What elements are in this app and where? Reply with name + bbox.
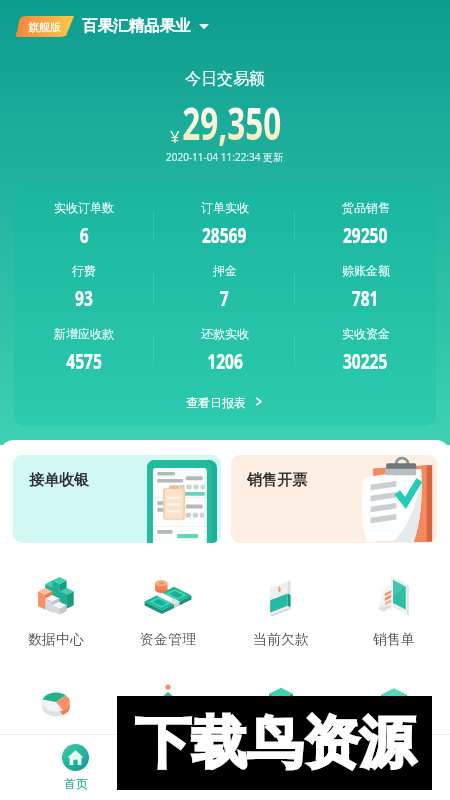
staticText: 押金 <box>213 263 237 278</box>
staticText: 百果汇精品果业 <box>82 16 191 36</box>
button[interactable]: 我的 <box>350 735 420 800</box>
staticText: 93 <box>75 284 94 313</box>
staticText: 7 <box>220 284 229 313</box>
staticText: 接单收银 <box>29 471 89 490</box>
staticText: 29,350 <box>182 92 282 153</box>
staticText: 数据中心 <box>28 631 84 649</box>
staticText: 1206 <box>207 347 243 376</box>
staticText: 4575 <box>66 347 102 376</box>
button[interactable]: 销售单 <box>337 573 450 649</box>
staticText: 今日交易额 <box>185 69 265 89</box>
staticText: 2020-11-04 11:22:34 更新 <box>166 150 284 164</box>
staticText: 30225 <box>343 347 388 376</box>
staticText: 货品销售 <box>342 200 390 215</box>
button[interactable]: 采购 <box>150 735 220 800</box>
button[interactable]: 销售开票 <box>231 455 437 543</box>
button[interactable] <box>337 680 450 738</box>
staticText: 首页 <box>64 776 88 791</box>
staticText: 实收订单数 <box>54 200 114 215</box>
staticText: ¥ <box>170 125 180 148</box>
staticText: 旗舰版 <box>28 20 61 34</box>
button[interactable]: 查看日报表 <box>14 377 436 426</box>
button[interactable] <box>112 680 224 738</box>
staticText: 还款实收 <box>201 326 249 341</box>
button[interactable]: 旗舰版 <box>14 16 74 37</box>
staticText: 实收资金 <box>342 326 390 341</box>
button[interactable]: 百果汇精品果业 <box>82 16 210 36</box>
staticText: 销售开票 <box>247 471 307 490</box>
button[interactable]: 接单收银 <box>13 455 221 543</box>
button[interactable]: 当前欠款 <box>224 573 337 649</box>
staticText: 新增应收款 <box>54 326 114 341</box>
staticText: 查看日报表 <box>186 395 246 410</box>
staticText: 下载鸟资源 <box>135 708 415 779</box>
staticText: 赊账金额 <box>342 263 390 278</box>
button[interactable]: 销售 <box>250 735 320 800</box>
staticText: 29250 <box>343 221 388 250</box>
staticText: 资金管理 <box>140 631 196 649</box>
staticText: 销售单 <box>373 631 415 649</box>
staticText: 当前欠款 <box>253 631 309 649</box>
button[interactable]: 数据中心 <box>0 573 112 649</box>
staticText: 781 <box>352 284 379 313</box>
staticText: 6 <box>80 221 89 250</box>
staticText: 28569 <box>202 221 247 250</box>
button[interactable]: 资金管理 <box>112 573 224 649</box>
staticText: 订单实收 <box>201 200 249 215</box>
button[interactable] <box>224 680 337 738</box>
button[interactable]: 首页 <box>40 735 110 800</box>
staticText: 行费 <box>72 263 96 278</box>
button[interactable] <box>0 680 112 738</box>
